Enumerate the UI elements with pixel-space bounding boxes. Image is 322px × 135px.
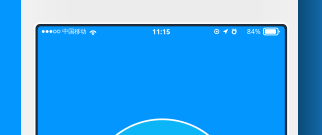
staticText: 中国移动 (62, 28, 86, 35)
staticText: 11:15 (152, 27, 170, 36)
staticText: 84% (247, 27, 261, 36)
